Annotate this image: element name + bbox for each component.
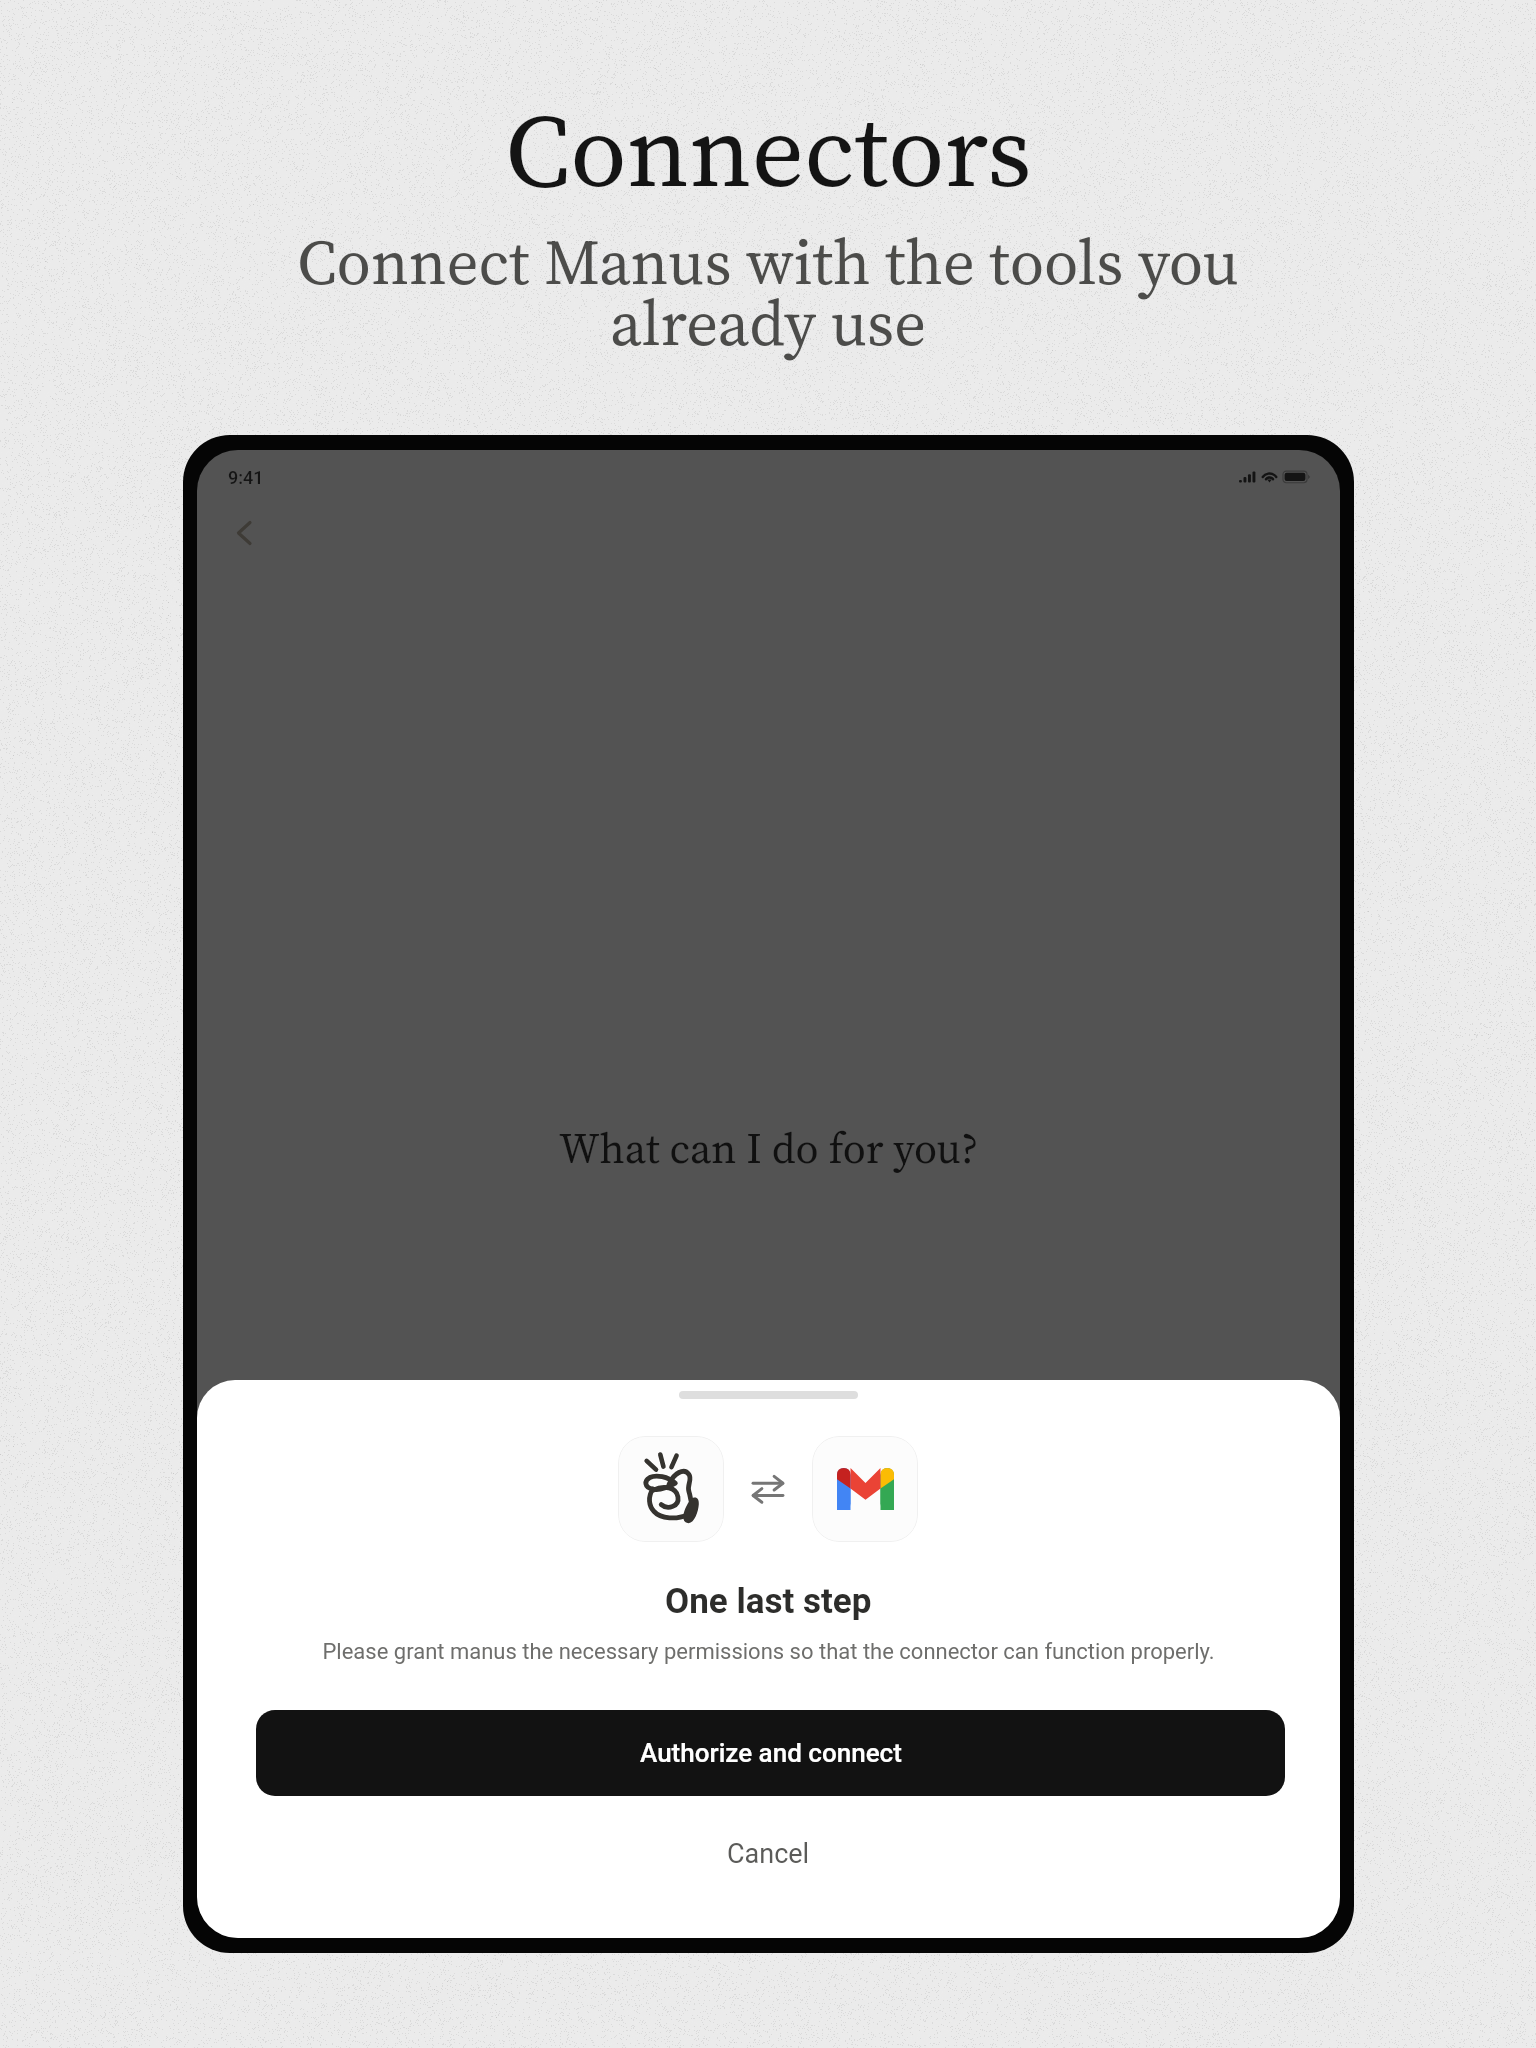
button[interactable]: Gmail xyxy=(812,1436,918,1542)
staticText: Authorize and connect xyxy=(640,1738,902,1768)
button[interactable]: Authorize and connect xyxy=(256,1710,1285,1796)
staticText: Connectors xyxy=(505,79,1032,220)
button[interactable]: Manus xyxy=(618,1436,724,1542)
staticText: Please grant manus the necessary permiss… xyxy=(322,1639,1215,1665)
other: Connect Manus with Gmail xyxy=(751,1472,785,1506)
staticText: What can I do for you? xyxy=(559,1119,979,1177)
staticText: Cancel xyxy=(727,1838,810,1870)
staticText: 9:41 xyxy=(228,467,264,488)
staticText: Connect Manus with the tools you already… xyxy=(297,219,1239,366)
staticText: One last step xyxy=(665,1581,872,1622)
button[interactable]: Cancel xyxy=(197,1806,1340,1902)
button[interactable]: Back xyxy=(224,515,264,555)
